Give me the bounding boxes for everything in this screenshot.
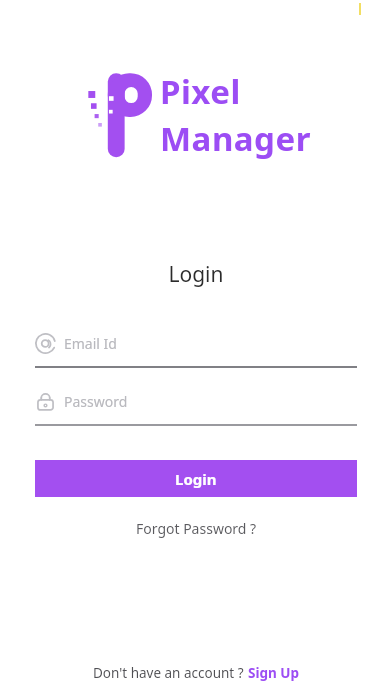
staticText: Password bbox=[64, 392, 128, 411]
button[interactable]: Login bbox=[35, 460, 357, 497]
staticText: Login bbox=[175, 469, 217, 489]
button[interactable]: Forgot Password ? bbox=[128, 516, 265, 541]
other: Password bbox=[35, 391, 56, 412]
staticText: Login bbox=[0, 260, 392, 289]
button[interactable]: Sign Up bbox=[248, 664, 300, 682]
staticText: Manager bbox=[160, 116, 311, 161]
staticText: Don't have an account ? bbox=[93, 664, 248, 682]
staticText: Pixel bbox=[160, 69, 241, 114]
staticText: Email Id bbox=[64, 334, 117, 353]
staticText: Sign Up bbox=[248, 664, 300, 682]
staticText: Forgot Password ? bbox=[136, 519, 257, 538]
